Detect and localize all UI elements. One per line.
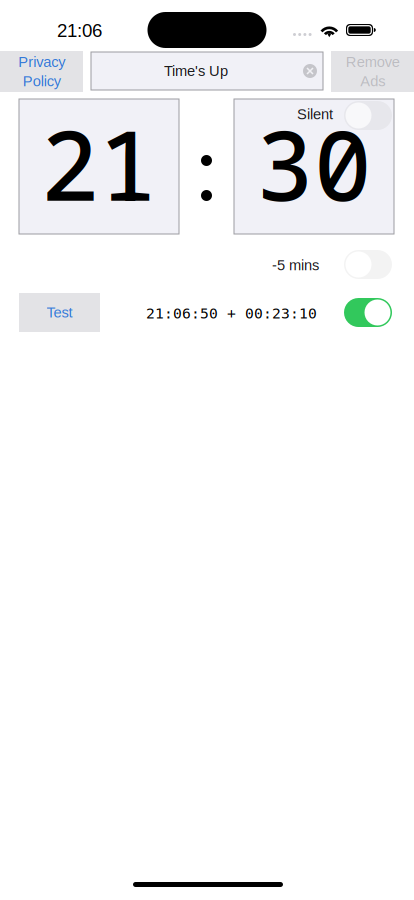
staticText: Silent <box>297 106 333 122</box>
button[interactable]: Silent <box>344 101 392 130</box>
button[interactable]: 21 <box>19 99 179 234</box>
staticText: Remove Ads <box>345 54 399 89</box>
staticText: Test <box>46 304 72 321</box>
button[interactable]: Minus 5 minutes <box>344 250 392 279</box>
button[interactable]: Timer enabled <box>344 298 392 327</box>
button[interactable]: 30 <box>234 99 394 234</box>
staticText: 21 <box>41 98 157 229</box>
staticText: 30 <box>256 98 372 229</box>
staticText: Privacy Policy <box>18 54 65 89</box>
button[interactable]: Remove Ads <box>331 51 414 92</box>
button[interactable]: Clear text <box>303 64 317 78</box>
staticText: 21:06 <box>57 20 102 41</box>
button[interactable]: Privacy Policy <box>0 51 83 92</box>
staticText: -5 mins <box>272 257 319 273</box>
button[interactable]: Test <box>19 293 100 332</box>
staticText: 21:06:50 + 00:23:10 <box>146 305 317 322</box>
staticText: Time's Up <box>164 63 228 79</box>
